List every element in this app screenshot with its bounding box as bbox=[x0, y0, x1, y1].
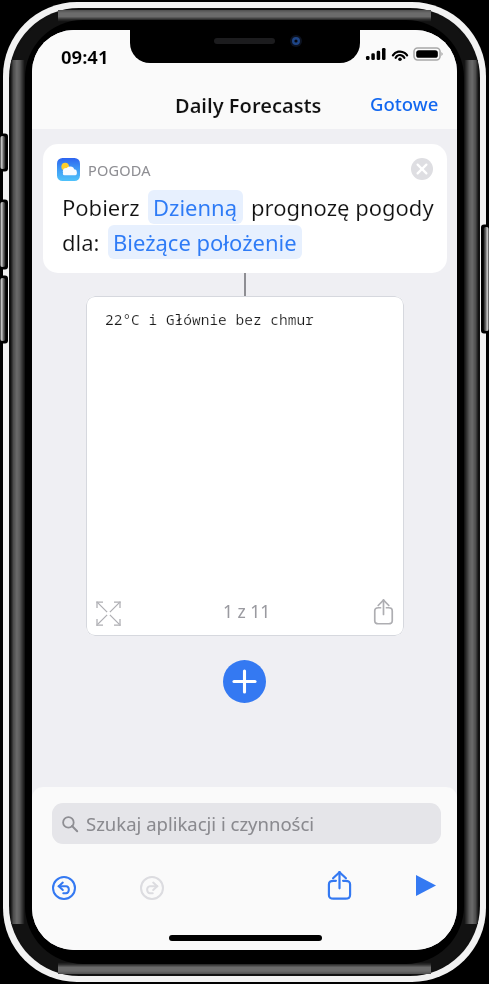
staticText: prognozę pogody bbox=[251, 192, 434, 222]
button[interactable]: Bieżące położenie bbox=[113, 227, 297, 257]
button[interactable]: Dodaj czynność bbox=[223, 660, 266, 703]
staticText: Bieżące położenie bbox=[113, 227, 297, 257]
staticText: 09:41 bbox=[61, 44, 109, 69]
staticText: dla: bbox=[62, 227, 100, 257]
button[interactable]: Rozwiń wynik bbox=[92, 597, 125, 630]
button[interactable]: Udostępnij skrót bbox=[321, 866, 358, 903]
staticText: Daily Forecasts bbox=[175, 92, 322, 119]
staticText: Gotowe bbox=[370, 91, 439, 116]
button[interactable]: Dzienną bbox=[153, 192, 238, 222]
staticText: Dzienną bbox=[153, 192, 238, 222]
staticText: 22°C i Głównie bez chmur bbox=[105, 309, 314, 329]
button[interactable]: POGODA bbox=[43, 144, 447, 273]
button[interactable]: Cofnij bbox=[45, 869, 82, 906]
staticText: Szukaj aplikacji i czynności bbox=[86, 811, 315, 836]
button[interactable]: Usuń czynność bbox=[411, 158, 433, 180]
button[interactable]: Gotowe bbox=[362, 85, 447, 121]
staticText: POGODA bbox=[88, 160, 151, 180]
staticText: Pobierz bbox=[62, 192, 140, 222]
staticText: 1 z 11 bbox=[223, 599, 271, 623]
button[interactable]: Szukaj aplikacji i czynności bbox=[52, 803, 441, 844]
button[interactable]: Ponów bbox=[133, 869, 170, 906]
button[interactable]: Uruchom skrót bbox=[407, 867, 444, 904]
button[interactable]: Udostępnij wynik bbox=[368, 596, 398, 626]
